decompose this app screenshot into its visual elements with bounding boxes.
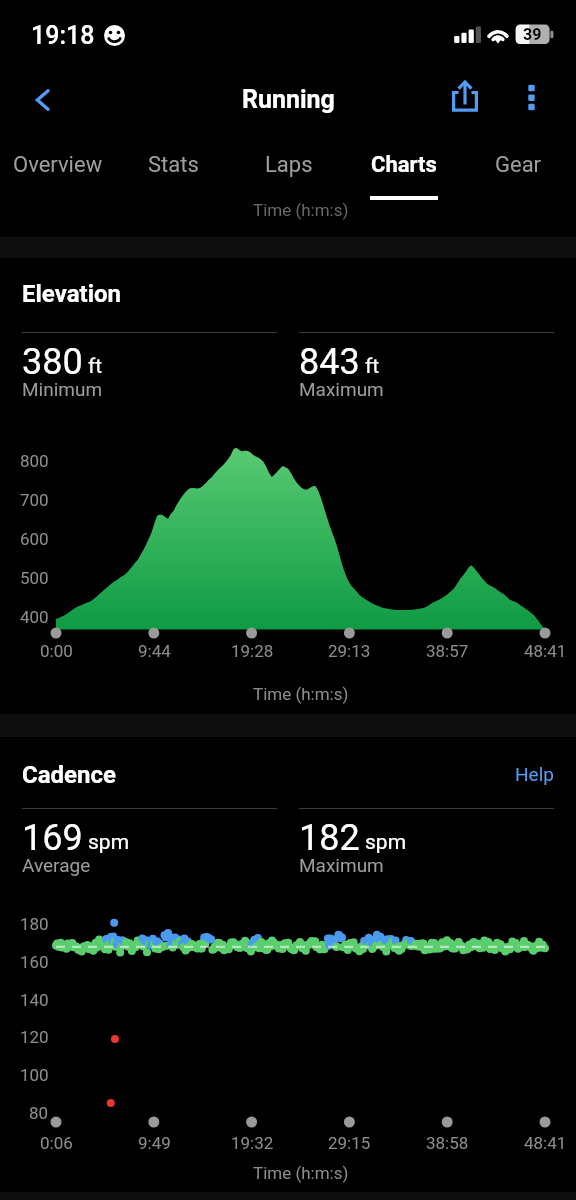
staticText: 500	[20, 568, 49, 588]
staticText: Minimum	[22, 378, 103, 400]
staticText: Time (h:m:s)	[253, 1163, 349, 1183]
staticText: 19:18	[31, 21, 95, 50]
staticText: 0:00	[40, 641, 73, 661]
button[interactable]: Laps	[231, 134, 346, 202]
staticText: Running	[242, 85, 335, 114]
staticText: Elevation	[22, 280, 121, 308]
staticText: Gear	[495, 152, 542, 178]
staticText: Maximum	[299, 378, 384, 400]
staticText: spm	[365, 830, 407, 855]
staticText: 182	[299, 817, 360, 859]
staticText: 38:57	[426, 641, 469, 661]
button[interactable]: Stats	[116, 134, 231, 202]
button[interactable]: Share	[437, 66, 493, 134]
staticText: 100	[20, 1065, 49, 1085]
staticText: 600	[20, 529, 49, 549]
staticText: 800	[20, 451, 49, 471]
staticText: Cadence	[22, 761, 117, 789]
staticText: ft	[365, 354, 380, 379]
button[interactable]: Overview	[0, 134, 116, 202]
staticText: 39	[523, 25, 542, 44]
button[interactable]: Charts	[346, 134, 461, 202]
staticText: 140	[20, 990, 49, 1010]
staticText: Stats	[148, 152, 199, 178]
staticText: ft	[88, 354, 103, 379]
staticText: 9:49	[138, 1133, 171, 1153]
staticText: 169	[22, 817, 83, 859]
staticText: Help	[515, 763, 554, 785]
button[interactable]: More options	[504, 66, 560, 134]
button[interactable]: Gear	[461, 134, 576, 202]
staticText: Time (h:m:s)	[253, 200, 349, 220]
staticText: Overview	[13, 152, 103, 178]
staticText: spm	[88, 830, 130, 855]
staticText: 29:15	[328, 1133, 371, 1153]
staticText: Maximum	[299, 854, 384, 876]
staticText: Charts	[371, 152, 437, 178]
staticText: Time (h:m:s)	[253, 684, 349, 704]
button[interactable]: Help	[515, 763, 554, 785]
button[interactable]: Back	[14, 71, 72, 129]
staticText: 19:28	[231, 641, 274, 661]
staticText: 19:32	[231, 1133, 274, 1153]
staticText: Laps	[265, 152, 313, 178]
staticText: 400	[20, 607, 49, 627]
staticText: 120	[20, 1027, 49, 1047]
staticText: 9:44	[138, 641, 171, 661]
staticText: 38:58	[426, 1133, 469, 1153]
staticText: 160	[20, 952, 49, 972]
staticText: 380	[22, 341, 83, 383]
staticText: 80	[29, 1103, 49, 1123]
staticText: 843	[299, 341, 360, 383]
staticText: Average	[22, 854, 91, 876]
staticText: 0:06	[40, 1133, 73, 1153]
staticText: 48:41	[524, 1133, 567, 1153]
staticText: 180	[20, 914, 49, 934]
staticText: 29:13	[328, 641, 371, 661]
staticText: 48:41	[524, 641, 567, 661]
staticText: 700	[20, 490, 49, 510]
